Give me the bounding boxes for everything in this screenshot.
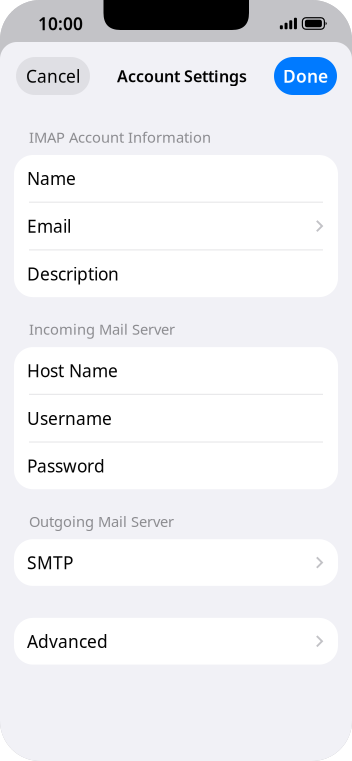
button[interactable]: Host Name bbox=[14, 347, 338, 394]
staticText: Done bbox=[283, 64, 328, 87]
staticText: 10:00 bbox=[38, 12, 83, 35]
staticText: Outgoing Mail Server bbox=[29, 511, 174, 531]
staticText: IMAP Account Information bbox=[29, 127, 211, 147]
button[interactable]: Advanced bbox=[14, 618, 338, 665]
button[interactable]: Password bbox=[14, 442, 338, 489]
button[interactable]: Done bbox=[274, 57, 337, 95]
staticText: Advanced bbox=[27, 630, 108, 653]
staticText: Password bbox=[27, 454, 105, 477]
button[interactable]: Description bbox=[14, 250, 338, 297]
staticText: Name bbox=[27, 167, 76, 190]
staticText: Incoming Mail Server bbox=[29, 319, 175, 339]
button[interactable]: Cancel bbox=[16, 57, 90, 95]
button[interactable]: Username bbox=[14, 395, 338, 441]
staticText: Description bbox=[27, 262, 119, 285]
button[interactable]: Name bbox=[14, 155, 338, 202]
button[interactable]: SMTP bbox=[14, 539, 338, 586]
staticText: Account Settings bbox=[117, 65, 247, 87]
staticText: SMTP bbox=[27, 551, 73, 574]
staticText: Username bbox=[27, 407, 112, 430]
staticText: Cancel bbox=[26, 64, 80, 87]
staticText: Host Name bbox=[27, 359, 118, 382]
button[interactable]: Email bbox=[14, 203, 338, 249]
staticText: Email bbox=[27, 214, 71, 237]
